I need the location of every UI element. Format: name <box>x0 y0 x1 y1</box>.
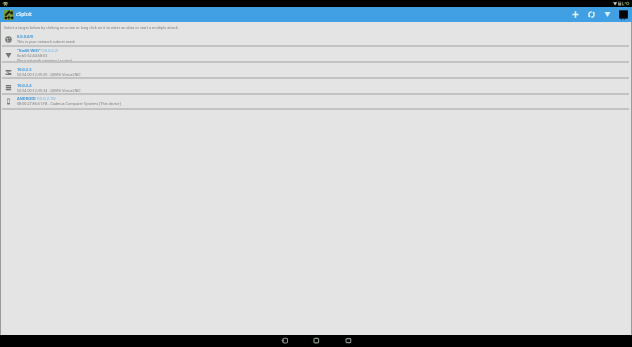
staticText: 52:54:00:12:35:30 - QEMU Virtual NIC <box>17 72 81 77</box>
button[interactable]: Recent apps <box>345 335 351 347</box>
staticText: (Your network gateway / router) <box>17 58 73 63</box>
button[interactable]: Back <box>281 335 287 347</box>
staticText: 10.0.2.3 <box>17 67 32 72</box>
button[interactable]: Console <box>615 7 631 22</box>
staticText: 08:00:27:86:61:FB - Cadmus Computer Syst… <box>17 101 121 106</box>
staticText: cSploit <box>16 11 32 18</box>
button[interactable]: WiFi scan <box>599 7 615 22</box>
button[interactable]: 10.0.2.4 <box>0 79 632 95</box>
staticText: 0x:b0:52:44:68:03 <box>17 53 48 58</box>
button[interactable]: Refresh <box>583 7 599 22</box>
staticText: ANDROID (10.0.2.15) <box>17 96 56 101</box>
staticText: "Gw06 WiFi" (10.0.2.2) <box>17 48 59 53</box>
button[interactable]: Home <box>313 335 319 347</box>
button[interactable]: Add target <box>567 7 583 22</box>
staticText: Select a target below by clicking on a r… <box>4 25 179 30</box>
button[interactable]: 0.0.0.0/0 <box>0 33 632 47</box>
staticText: 0.0.0.0/0 <box>17 34 34 39</box>
staticText: 52:54:00:12:35:34 - QEMU Virtual NIC <box>17 88 81 93</box>
button[interactable]: 10.0.2.3 <box>0 63 632 79</box>
staticText: 10.0.2.4 <box>17 83 32 88</box>
staticText: This is your network subnet mask <box>17 39 76 44</box>
button[interactable]: ANDROID (10.0.2.15) <box>0 95 632 110</box>
button[interactable]: "Gw06 WiFi" (10.0.2.2) <box>0 47 632 63</box>
